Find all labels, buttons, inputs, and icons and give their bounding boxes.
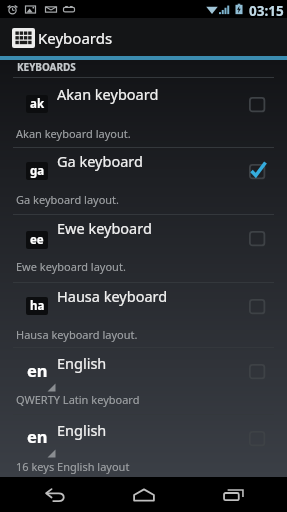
staticText: Ewe keyboard layout. [16, 259, 126, 274]
staticText: QWERTY Latin keyboard [16, 392, 140, 407]
button[interactable]: Keyboards [0, 18, 287, 56]
staticText: English [57, 420, 107, 440]
button[interactable]: ak [0, 78, 287, 148]
button[interactable]: Enabled [249, 164, 279, 188]
staticText: Akan keyboard layout. [16, 126, 131, 141]
staticText: 16 keys English layout [16, 459, 130, 474]
staticText: Hausa keyboard [57, 286, 168, 306]
staticText: KEYBOARDS [17, 60, 76, 74]
staticText: Akan keyboard [57, 84, 159, 104]
staticText: Hausa keyboard layout. [16, 327, 138, 342]
staticText: 03:15 [249, 2, 284, 20]
staticText: en [27, 425, 48, 443]
button[interactable]: Recent apps [197, 477, 269, 512]
button[interactable]: ee [0, 215, 287, 283]
staticText: ga [30, 163, 45, 179]
staticText: ha [30, 298, 45, 314]
staticText: Ga keyboard layout. [16, 192, 120, 207]
button[interactable]: en [0, 348, 287, 415]
button[interactable]: Home [108, 477, 180, 512]
button[interactable]: Disabled [249, 299, 279, 323]
staticText: Ga keyboard [57, 151, 143, 171]
button[interactable]: Disabled [249, 364, 279, 388]
staticText: ak [30, 96, 45, 112]
button[interactable]: Back [18, 477, 90, 512]
button[interactable]: Disabled [249, 231, 279, 255]
button[interactable]: Disabled [249, 97, 279, 121]
staticText: English [57, 353, 107, 373]
staticText: en [27, 359, 48, 377]
staticText: ee [30, 232, 44, 248]
staticText: Keyboards [38, 28, 113, 48]
button[interactable]: ga [0, 148, 287, 215]
button[interactable]: ha [0, 283, 287, 348]
button[interactable]: en [0, 415, 287, 482]
staticText: Ewe keyboard [57, 218, 152, 238]
